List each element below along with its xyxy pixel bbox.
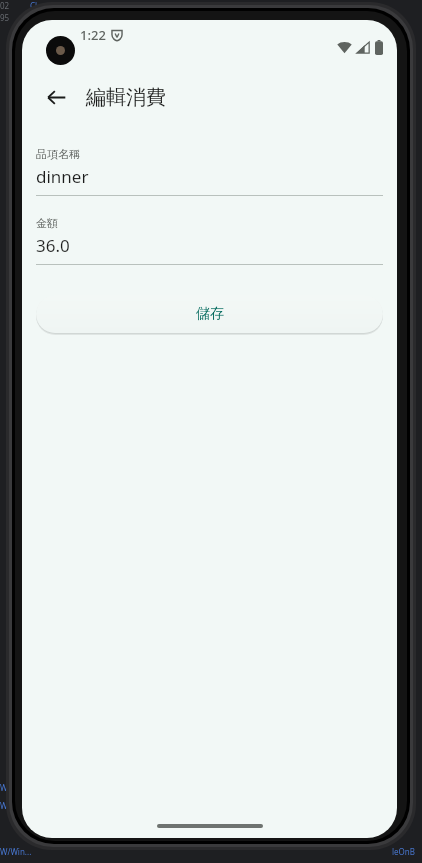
staticText: W/ (0, 782, 11, 793)
button[interactable]: 儲存 (36, 295, 383, 333)
staticText: W/Wi (0, 800, 20, 811)
staticText: Cl (30, 0, 38, 11)
staticText: 95 (0, 12, 10, 23)
button[interactable]: Back (36, 77, 76, 117)
staticText: 36.0 (36, 234, 70, 257)
staticText: 02 (0, 0, 10, 11)
staticText: 編輯消費 (86, 85, 166, 110)
staticText: W/Win... (0, 846, 32, 857)
staticText: 1:22 (80, 26, 106, 44)
staticText: 品項名稱 (36, 147, 80, 161)
staticText: 儲存 (196, 305, 224, 323)
staticText: dinner (36, 165, 89, 188)
staticText: leOnB (392, 846, 415, 857)
staticText: 金額 (36, 216, 58, 230)
